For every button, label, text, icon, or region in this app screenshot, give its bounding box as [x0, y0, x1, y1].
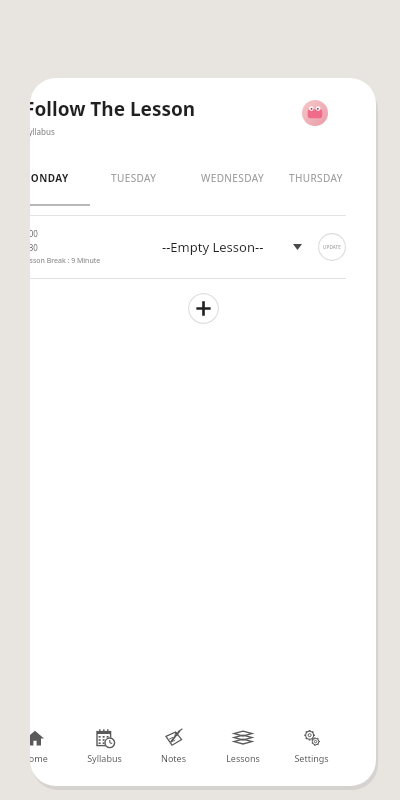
- staticText: Notes: [161, 752, 186, 764]
- staticText: --Empty Lesson--: [162, 238, 264, 256]
- button[interactable]: THURSDAY: [286, 161, 346, 195]
- button[interactable]: 9:00: [30, 216, 346, 278]
- button[interactable]: Add lesson: [188, 293, 219, 324]
- button[interactable]: Notes: [139, 720, 208, 772]
- button[interactable]: Select lesson: [286, 236, 308, 258]
- button[interactable]: TUESDAY: [90, 161, 178, 195]
- button[interactable]: WEDNESDAY: [178, 161, 286, 195]
- button[interactable]: Syllabus: [70, 720, 139, 772]
- button[interactable]: Settings: [277, 720, 346, 772]
- staticText: THURSDAY: [289, 171, 343, 185]
- staticText: 9:30: [30, 242, 38, 253]
- staticText: Lessons: [226, 752, 260, 764]
- staticText: Syllabus: [30, 126, 55, 137]
- staticText: MONDAY: [30, 171, 69, 185]
- staticText: Follow The Lesson: [30, 96, 196, 122]
- button[interactable]: Lessons: [208, 720, 277, 772]
- staticText: WEDNESDAY: [201, 171, 264, 185]
- staticText: Settings: [294, 752, 329, 764]
- staticText: TUESDAY: [111, 171, 157, 185]
- staticText: UPDATE: [323, 244, 341, 250]
- button[interactable]: Profile: [300, 98, 330, 128]
- staticText: Syllabus: [87, 752, 122, 764]
- staticText: Home: [30, 752, 48, 764]
- button[interactable]: UPDATE: [318, 230, 346, 264]
- button[interactable]: Home: [30, 720, 70, 772]
- button[interactable]: MONDAY: [30, 161, 90, 195]
- staticText: Lesson Break : 9 Minute: [30, 256, 101, 266]
- staticText: 9:00: [30, 228, 38, 239]
